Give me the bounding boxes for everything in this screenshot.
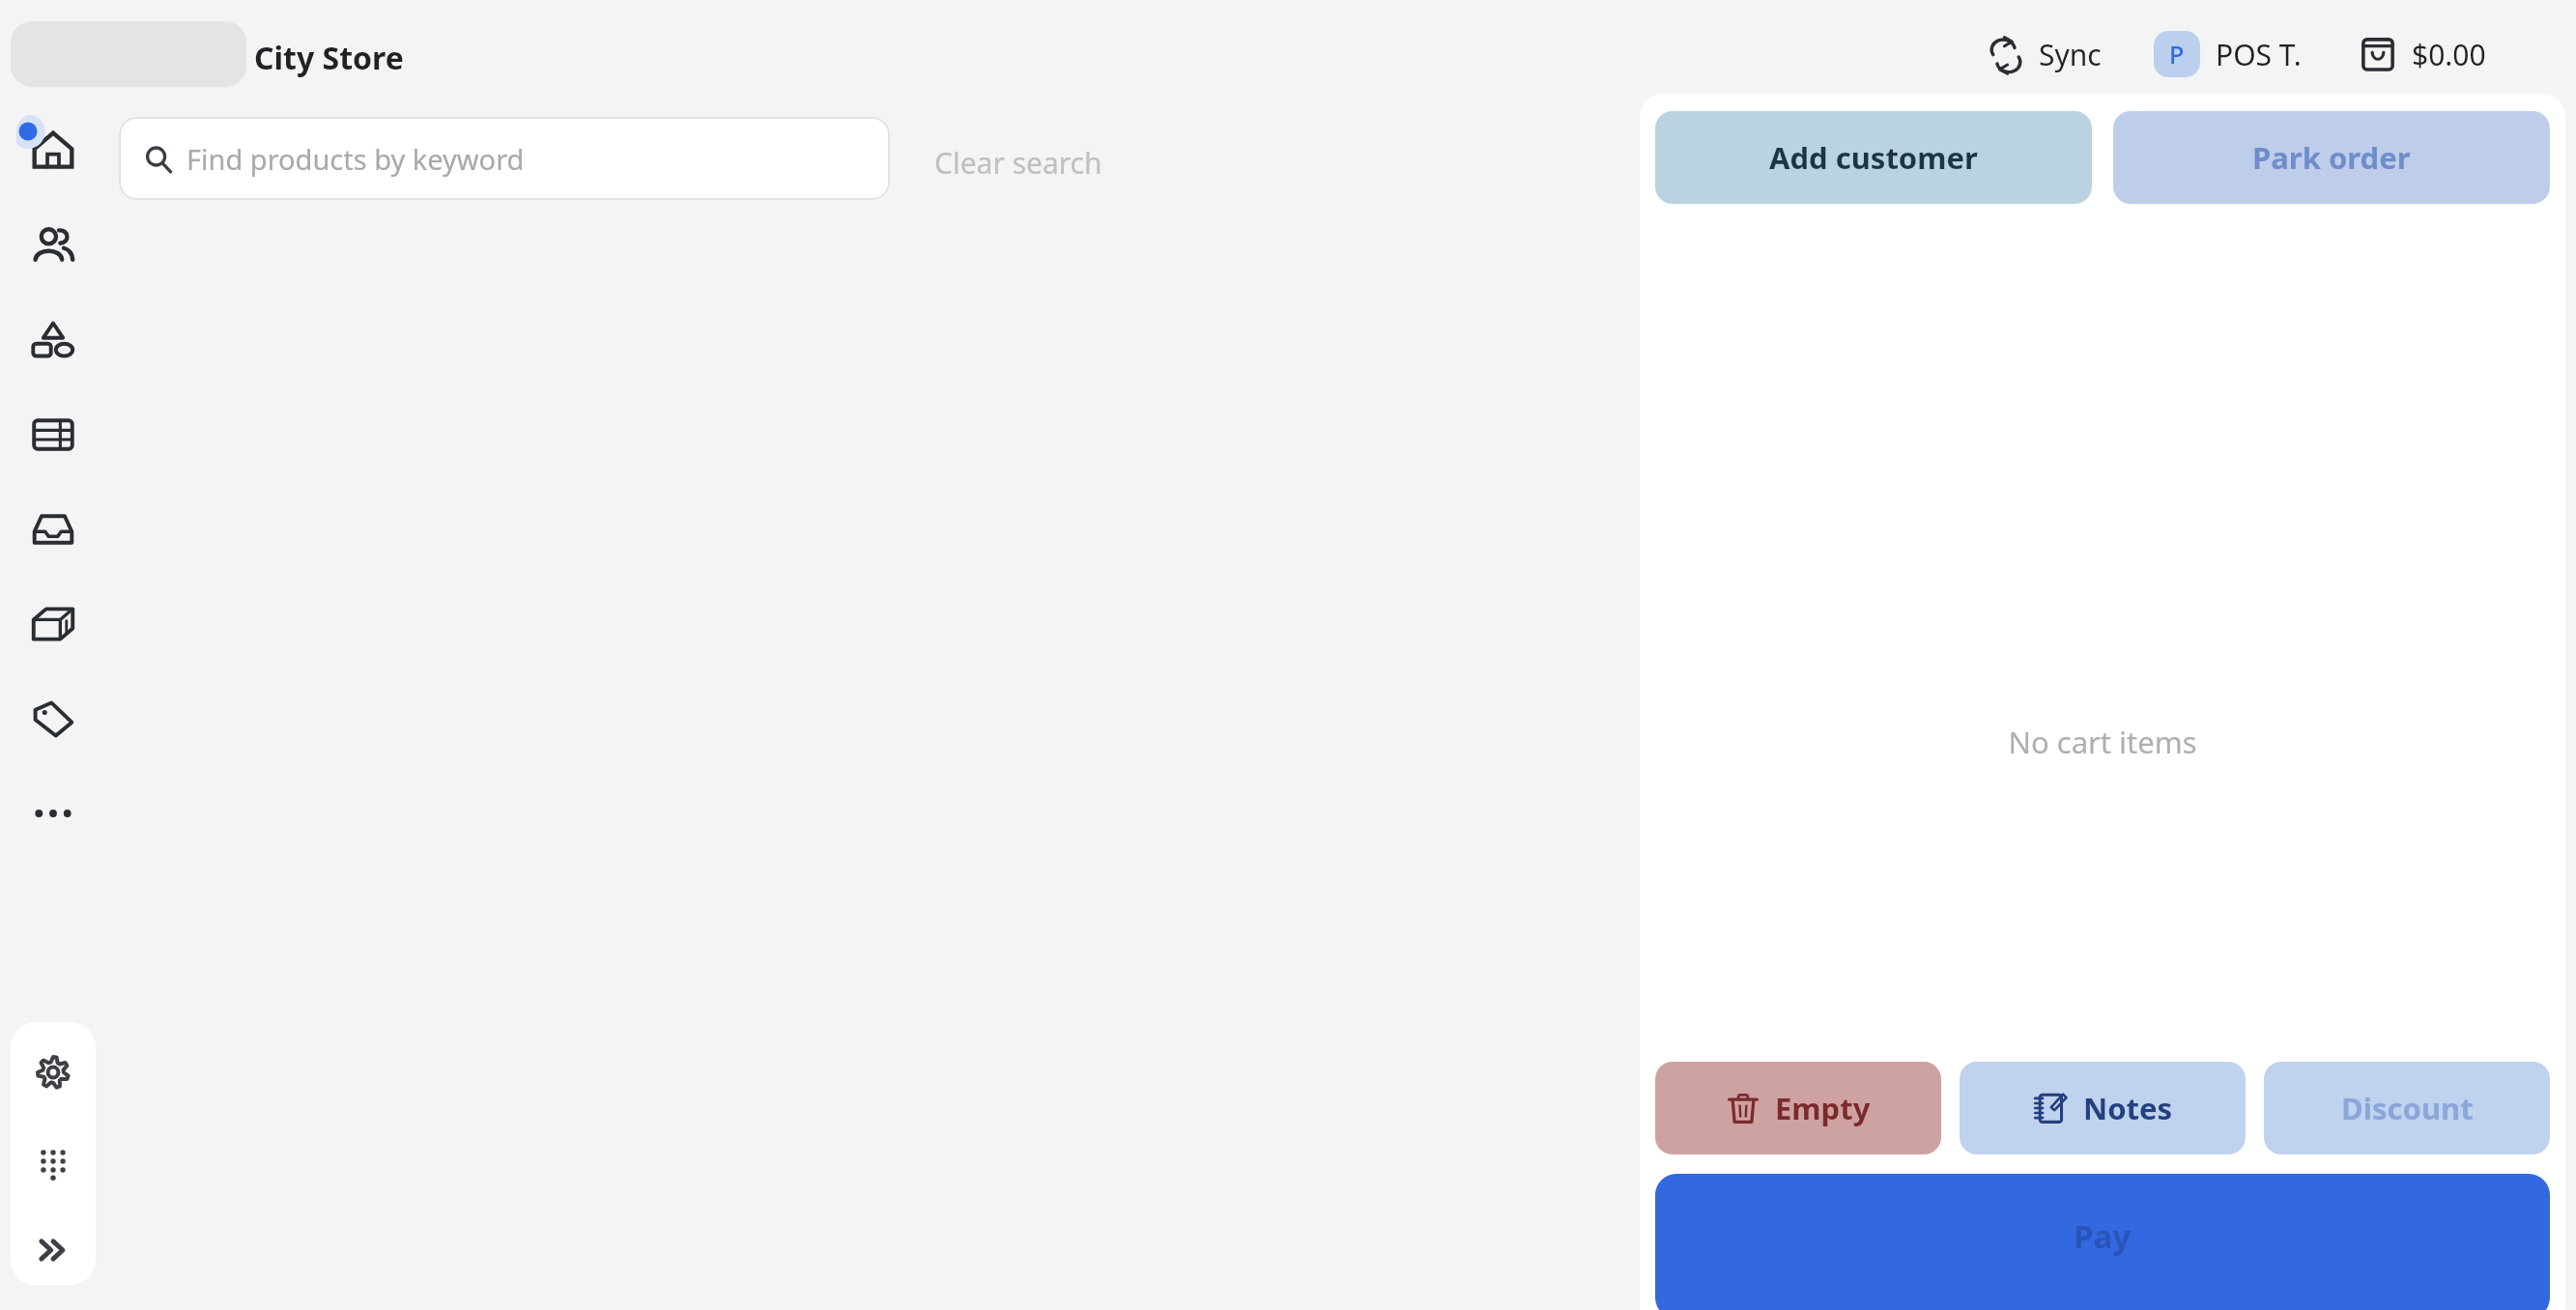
button[interactable]: Tables [16, 398, 90, 471]
staticText: Find products by keyword [186, 140, 525, 178]
staticText: Notes [2083, 1088, 2173, 1128]
button[interactable]: Keypad [22, 1130, 84, 1192]
button[interactable]: Clear search [923, 135, 1114, 190]
button[interactable]: Expand [22, 1219, 84, 1281]
button[interactable]: Customers [16, 209, 90, 282]
staticText: Park order [2252, 137, 2411, 178]
button[interactable]: Empty [1655, 1062, 1941, 1154]
button[interactable]: Home [16, 114, 90, 187]
button[interactable]: Pay [1655, 1174, 2550, 1310]
button[interactable] [11, 21, 246, 87]
button[interactable]: Orders [16, 493, 90, 566]
staticText: Sync [2039, 35, 2102, 74]
button[interactable]: Park order [2113, 111, 2550, 204]
button[interactable]: Settings [22, 1041, 84, 1103]
button[interactable]: Discount [2264, 1062, 2550, 1154]
button[interactable]: $0.00 [2352, 28, 2492, 80]
staticText: POS T. [2216, 35, 2302, 74]
staticText: Empty [1775, 1088, 1871, 1128]
staticText: Pay [2074, 1214, 2132, 1258]
button[interactable]: More [16, 777, 90, 850]
button[interactable]: Sync [1981, 29, 2107, 80]
staticText: P [2169, 38, 2185, 71]
staticText: City Store [254, 37, 404, 79]
staticText: Discount [2341, 1088, 2474, 1128]
staticText: Add customer [1769, 137, 1978, 178]
staticText: No cart items [2008, 722, 2197, 762]
button[interactable]: Add customer [1655, 111, 2092, 204]
button[interactable]: Find products by keyword [119, 117, 890, 200]
button[interactable]: Inventory [16, 587, 90, 661]
button[interactable]: Notes [1960, 1062, 2246, 1154]
button[interactable]: Discounts [16, 682, 90, 755]
button[interactable]: Products [16, 303, 90, 377]
staticText: $0.00 [2412, 35, 2486, 74]
staticText: Clear search [934, 143, 1102, 183]
button[interactable]: P [2150, 27, 2305, 81]
